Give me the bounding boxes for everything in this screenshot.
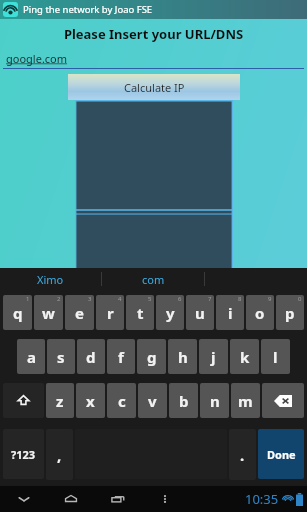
- button[interactable]: d: [77, 339, 105, 374]
- staticText: t: [137, 303, 144, 323]
- button[interactable]: b: [169, 383, 198, 418]
- staticText: g: [147, 347, 157, 367]
- button[interactable]: Menu: [141, 486, 188, 512]
- staticText: 3: [88, 295, 92, 303]
- button[interactable]: .: [229, 429, 256, 480]
- staticText: r: [107, 303, 114, 323]
- button[interactable]: j: [199, 339, 228, 374]
- staticText: w: [42, 303, 55, 323]
- button[interactable]: Ximo: [0, 268, 101, 290]
- staticText: o: [255, 303, 265, 323]
- staticText: Done: [267, 447, 296, 462]
- staticText: 6: [178, 295, 182, 303]
- button[interactable]: Done: [258, 429, 304, 479]
- button[interactable]: 3: [65, 295, 94, 330]
- staticText: m: [238, 391, 253, 411]
- button[interactable]: n: [200, 383, 229, 418]
- button[interactable]: 6: [156, 295, 184, 330]
- button[interactable]: ,: [46, 429, 73, 480]
- staticText: com: [142, 272, 165, 287]
- staticText: h: [178, 347, 188, 367]
- staticText: Please Insert your URL/DNS: [0, 25, 307, 43]
- staticText: u: [195, 303, 205, 323]
- button[interactable]: 7: [186, 295, 214, 330]
- staticText: Ximo: [37, 272, 64, 287]
- button[interactable]: v: [138, 383, 167, 418]
- button[interactable]: 1: [3, 295, 32, 330]
- button[interactable]: z: [46, 383, 74, 418]
- staticText: 7: [208, 295, 212, 303]
- staticText: n: [210, 391, 220, 411]
- staticText: f: [118, 347, 124, 367]
- button[interactable]: 2: [34, 295, 63, 330]
- button[interactable]: g: [137, 339, 166, 374]
- staticText: google.com: [6, 51, 68, 66]
- staticText: q: [13, 303, 23, 323]
- staticText: 8: [238, 295, 242, 303]
- button[interactable]: h: [168, 339, 197, 374]
- staticText: p: [285, 303, 295, 323]
- staticText: Ping the network by Joao FSE: [23, 3, 153, 16]
- staticText: k: [240, 347, 250, 367]
- staticText: .: [240, 445, 245, 465]
- button[interactable]: l: [261, 339, 290, 374]
- button[interactable]: 8: [216, 295, 244, 330]
- staticText: a: [27, 347, 36, 367]
- staticText: 2: [57, 295, 61, 303]
- button[interactable]: Backspace: [262, 383, 304, 418]
- button[interactable]: Back: [0, 486, 47, 512]
- staticText: e: [75, 303, 84, 323]
- button[interactable]: f: [107, 339, 135, 374]
- staticText: c: [118, 391, 126, 411]
- staticText: b: [179, 391, 189, 411]
- button[interactable]: ?123: [3, 429, 44, 479]
- button[interactable]: google.com: [3, 51, 304, 69]
- button[interactable]: Shift: [3, 383, 44, 418]
- button[interactable]: 4: [96, 295, 124, 330]
- button[interactable]: Home: [47, 486, 94, 512]
- staticText: ?123: [11, 447, 36, 462]
- staticText: d: [86, 347, 96, 367]
- staticText: 0: [298, 295, 302, 303]
- staticText: s: [57, 347, 65, 367]
- button[interactable]: a: [17, 339, 45, 374]
- staticText: 9: [268, 295, 272, 303]
- button[interactable]: x: [76, 383, 105, 418]
- button[interactable]: 9: [246, 295, 274, 330]
- button[interactable]: 5: [126, 295, 154, 330]
- button[interactable]: k: [230, 339, 259, 374]
- staticText: l: [273, 347, 278, 367]
- button[interactable]: s: [47, 339, 75, 374]
- button[interactable]: m: [231, 383, 260, 418]
- staticText: z: [56, 391, 64, 411]
- staticText: x: [86, 391, 95, 411]
- button[interactable]: c: [107, 383, 136, 418]
- staticText: 4: [118, 295, 122, 303]
- staticText: v: [148, 391, 157, 411]
- button[interactable]: com: [102, 268, 204, 290]
- staticText: 1: [26, 295, 30, 303]
- staticText: i: [228, 303, 233, 323]
- button[interactable]: Recents: [94, 486, 141, 512]
- staticText: j: [211, 347, 216, 367]
- button[interactable]: 0: [276, 295, 304, 330]
- staticText: 5: [148, 295, 152, 303]
- staticText: ,: [57, 445, 62, 465]
- staticText: Calculate IP: [124, 80, 185, 95]
- staticText: y: [166, 303, 175, 323]
- staticText: 10:35: [245, 490, 279, 508]
- button[interactable]: Calculate IP: [68, 74, 240, 100]
